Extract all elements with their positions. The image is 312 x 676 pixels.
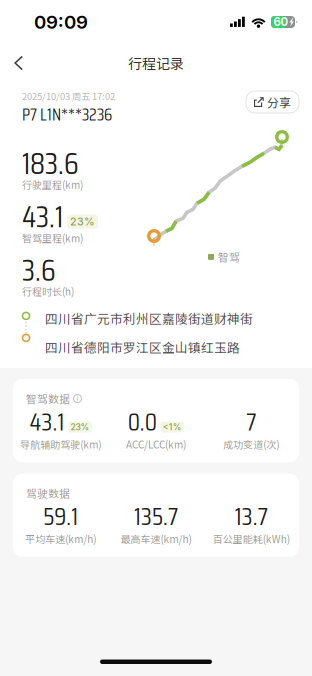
staticText: 60 [273,16,288,27]
button[interactable]: 分享 [246,91,299,113]
staticText: 183.6 [22,148,79,178]
staticText: 四川省广元市利州区嘉陵街道财神街 [45,310,253,326]
staticText: 分享 [267,94,291,109]
staticText: 平均车速(km/h) [25,532,96,545]
staticText: 43.1 [22,202,63,231]
staticText: 2025/10/03 周五 17:02 [22,90,115,102]
staticText: 行驶里程(km) [22,178,83,191]
staticText: 59.1 [43,504,78,528]
staticText: 四川省德阳市罗江区金山镇红玉路 [45,339,240,355]
staticText: i [76,395,78,402]
staticText: 驾驶数据 [26,486,70,500]
staticText: 智驾数据 [26,392,70,405]
staticText: 43.1 [29,409,64,434]
staticText: 135.7 [134,504,178,528]
staticText: 13.7 [235,504,268,528]
staticText: <1% [163,422,182,431]
staticText: 智驾里程(km) [22,232,83,244]
staticText: ACC/LCC(km) [126,438,186,450]
staticText: 行程记录 [128,54,184,72]
staticText: 最高车速(km/h) [120,532,191,545]
staticText: 23% [70,422,89,431]
staticText: 3.6 [22,255,56,285]
staticText: 23% [70,216,95,227]
button[interactable]: Back [0,49,37,76]
staticText: 0.0 [128,409,157,434]
staticText: 智驾 [218,250,240,264]
staticText: 7 [246,409,256,434]
staticText: 09:09 [34,12,88,32]
staticText: 导航辅助驾驶(km) [20,438,101,450]
staticText: 行程时长(h) [22,285,74,297]
staticText: P7 L1N***3236 [22,105,112,124]
staticText: 百公里能耗(kWh) [213,532,290,545]
staticText: 成功变道(次) [223,438,279,450]
